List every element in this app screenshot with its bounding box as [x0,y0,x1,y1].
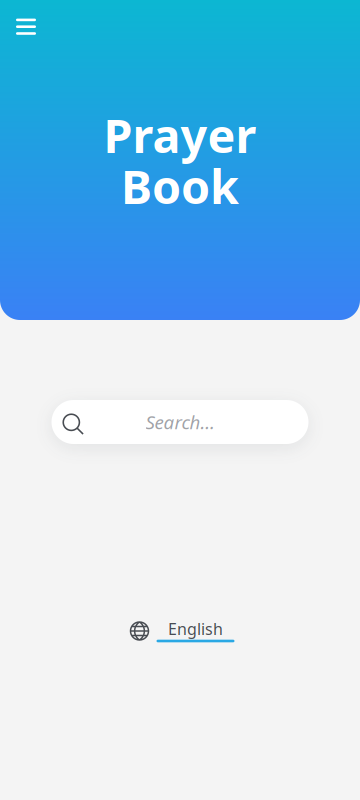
staticText: English [168,618,223,639]
staticText: Book [121,155,239,217]
staticText: Search… [145,410,214,434]
button[interactable]: English [125,616,234,646]
button[interactable]: Menu [0,0,52,49]
button[interactable]: Search… [51,400,308,444]
staticText: Prayer [103,104,256,166]
